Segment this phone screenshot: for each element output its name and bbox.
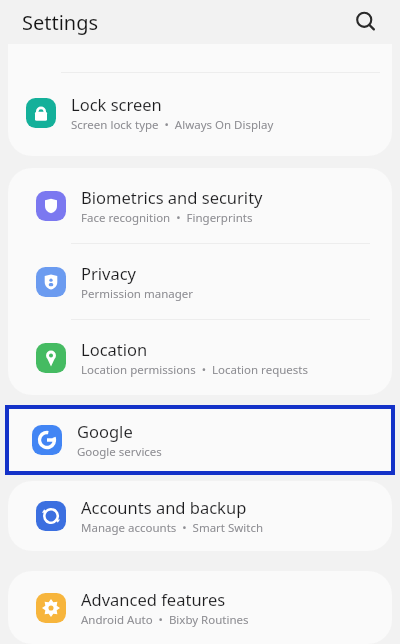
staticText: Lock screen (71, 93, 162, 115)
button[interactable]: Biometrics and security (18, 168, 382, 243)
staticText: Accounts and backup (81, 496, 247, 518)
staticText: Settings (22, 9, 99, 36)
staticText: Permission manager (81, 286, 194, 302)
staticText: Screen lock type • Always On Display (71, 117, 274, 133)
button[interactable]: Accounts and backup (18, 481, 382, 551)
staticText: Biometrics and security (81, 186, 263, 208)
staticText: Android Auto • Bixby Routines (81, 612, 249, 628)
button[interactable]: Search (346, 2, 386, 42)
button[interactable]: Privacy (18, 244, 382, 319)
staticText: Google services (77, 444, 162, 460)
staticText: Google (77, 420, 133, 442)
staticText: Face recognition • Fingerprints (81, 210, 253, 226)
staticText: Location (81, 338, 148, 360)
button[interactable]: Google (14, 409, 386, 471)
staticText: Advanced features (81, 588, 226, 610)
button[interactable]: Location (18, 320, 382, 395)
staticText: Manage accounts • Smart Switch (81, 520, 264, 536)
button[interactable]: Advanced features (18, 571, 382, 644)
staticText: Location permissions • Location requests (81, 362, 308, 378)
staticText: Privacy (81, 262, 137, 284)
button[interactable]: Lock screen (8, 73, 392, 153)
